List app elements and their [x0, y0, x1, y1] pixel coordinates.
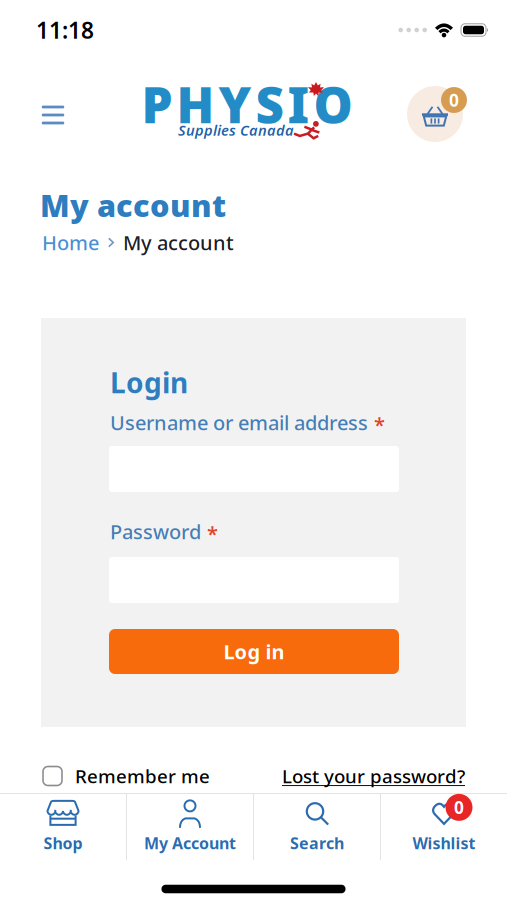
button[interactable]: Search — [254, 794, 380, 860]
button[interactable]: Cart — [403, 84, 467, 144]
staticText: Shop — [43, 832, 82, 854]
staticText: Log in — [223, 638, 284, 665]
button[interactable]: My Account — [127, 794, 253, 860]
staticText: 0 — [449, 88, 459, 111]
staticText: Home — [42, 229, 99, 256]
staticText: Remember me — [75, 764, 210, 788]
staticText: My Account — [144, 832, 236, 854]
button[interactable]: Remember me — [43, 764, 210, 788]
staticText: 0 — [454, 796, 464, 819]
staticText: Username or email address — [110, 409, 368, 436]
staticText: Password — [110, 518, 201, 545]
staticText: Lost your password? — [282, 764, 465, 788]
button[interactable]: Home — [42, 229, 99, 256]
button[interactable]: Shop — [0, 794, 126, 860]
staticText: My account — [123, 229, 234, 256]
button[interactable]: Lost your password? — [282, 764, 465, 788]
button[interactable]: Log in — [109, 629, 399, 674]
button[interactable]: 0 — [381, 794, 507, 860]
staticText: Login — [110, 364, 188, 401]
staticText: * — [207, 520, 218, 547]
staticText: * — [374, 411, 385, 438]
staticText: Supplies Canada — [178, 120, 294, 140]
staticText: My account — [40, 185, 226, 225]
staticText: Wishlist — [412, 832, 475, 854]
button[interactable]: Menu — [35, 97, 71, 133]
staticText: 11:18 — [36, 15, 94, 45]
staticText: Search — [290, 832, 344, 854]
staticText: PHYSIO — [141, 71, 352, 137]
